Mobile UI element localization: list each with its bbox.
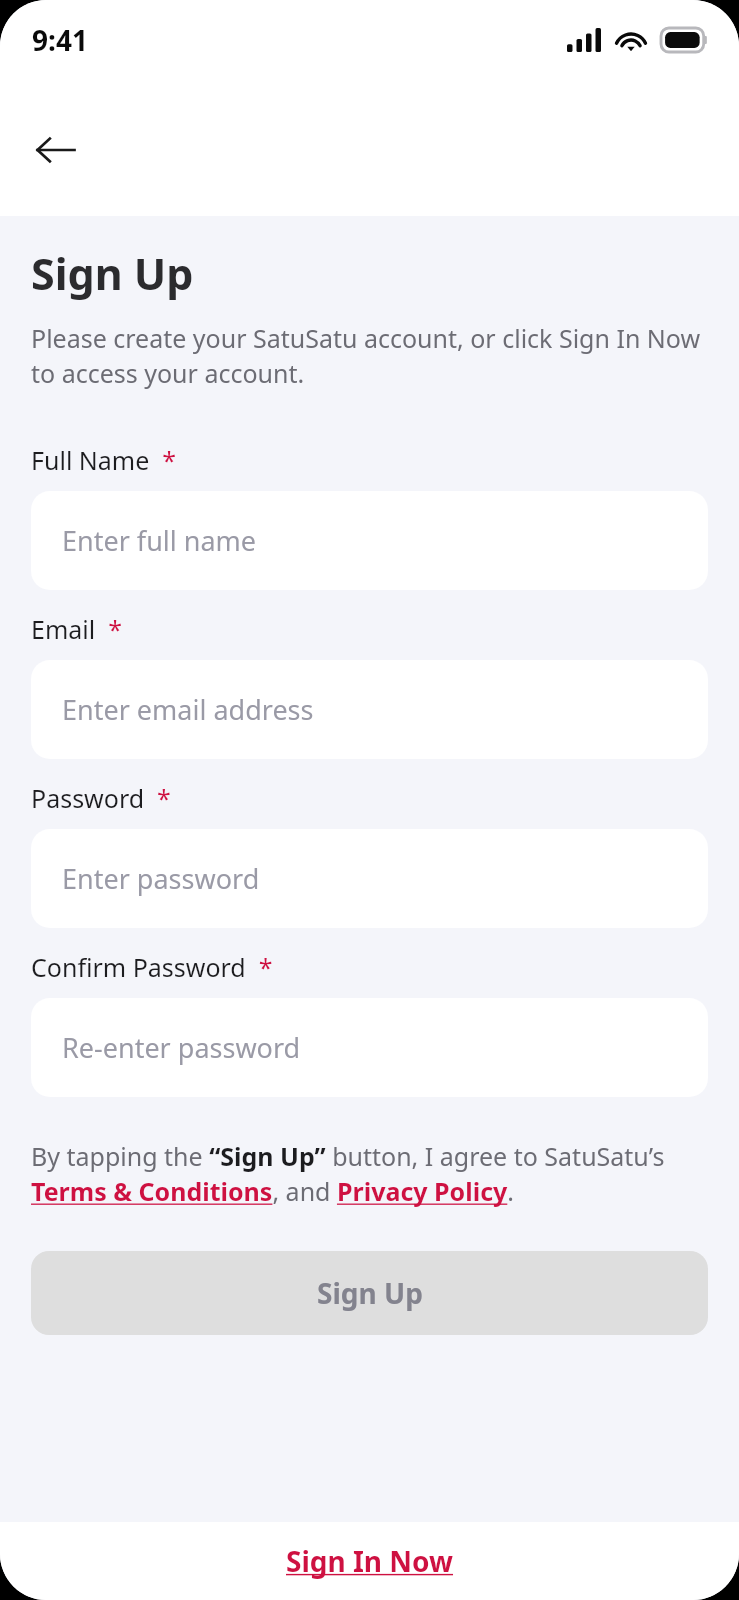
staticText: Full Name * — [31, 443, 177, 477]
staticText: Confirm Password * — [31, 950, 273, 984]
staticText: Enter email address — [62, 691, 314, 728]
button[interactable]: Enter password — [31, 829, 708, 928]
staticText: Sign Up — [31, 244, 194, 303]
button[interactable]: Enter full name — [31, 491, 708, 590]
staticText: By tapping the “Sign Up” button, I agree… — [31, 1139, 708, 1209]
staticText: Enter full name — [62, 522, 257, 559]
staticText: Sign In Now — [286, 1542, 454, 1580]
button[interactable]: Sign Up — [31, 1251, 708, 1335]
staticText: Enter password — [62, 860, 260, 897]
button[interactable]: Sign In Now — [262, 1532, 478, 1590]
staticText: Re-enter password — [62, 1029, 301, 1066]
staticText: Sign Up — [317, 1274, 423, 1312]
button[interactable]: Back — [18, 112, 94, 188]
button[interactable]: Re-enter password — [31, 998, 708, 1097]
staticText: 9:41 — [32, 21, 88, 59]
button[interactable]: Enter email address — [31, 660, 708, 759]
staticText: Password * — [31, 781, 171, 815]
staticText: Email * — [31, 612, 122, 646]
staticText: Please create your SatuSatu account, or … — [31, 321, 708, 391]
